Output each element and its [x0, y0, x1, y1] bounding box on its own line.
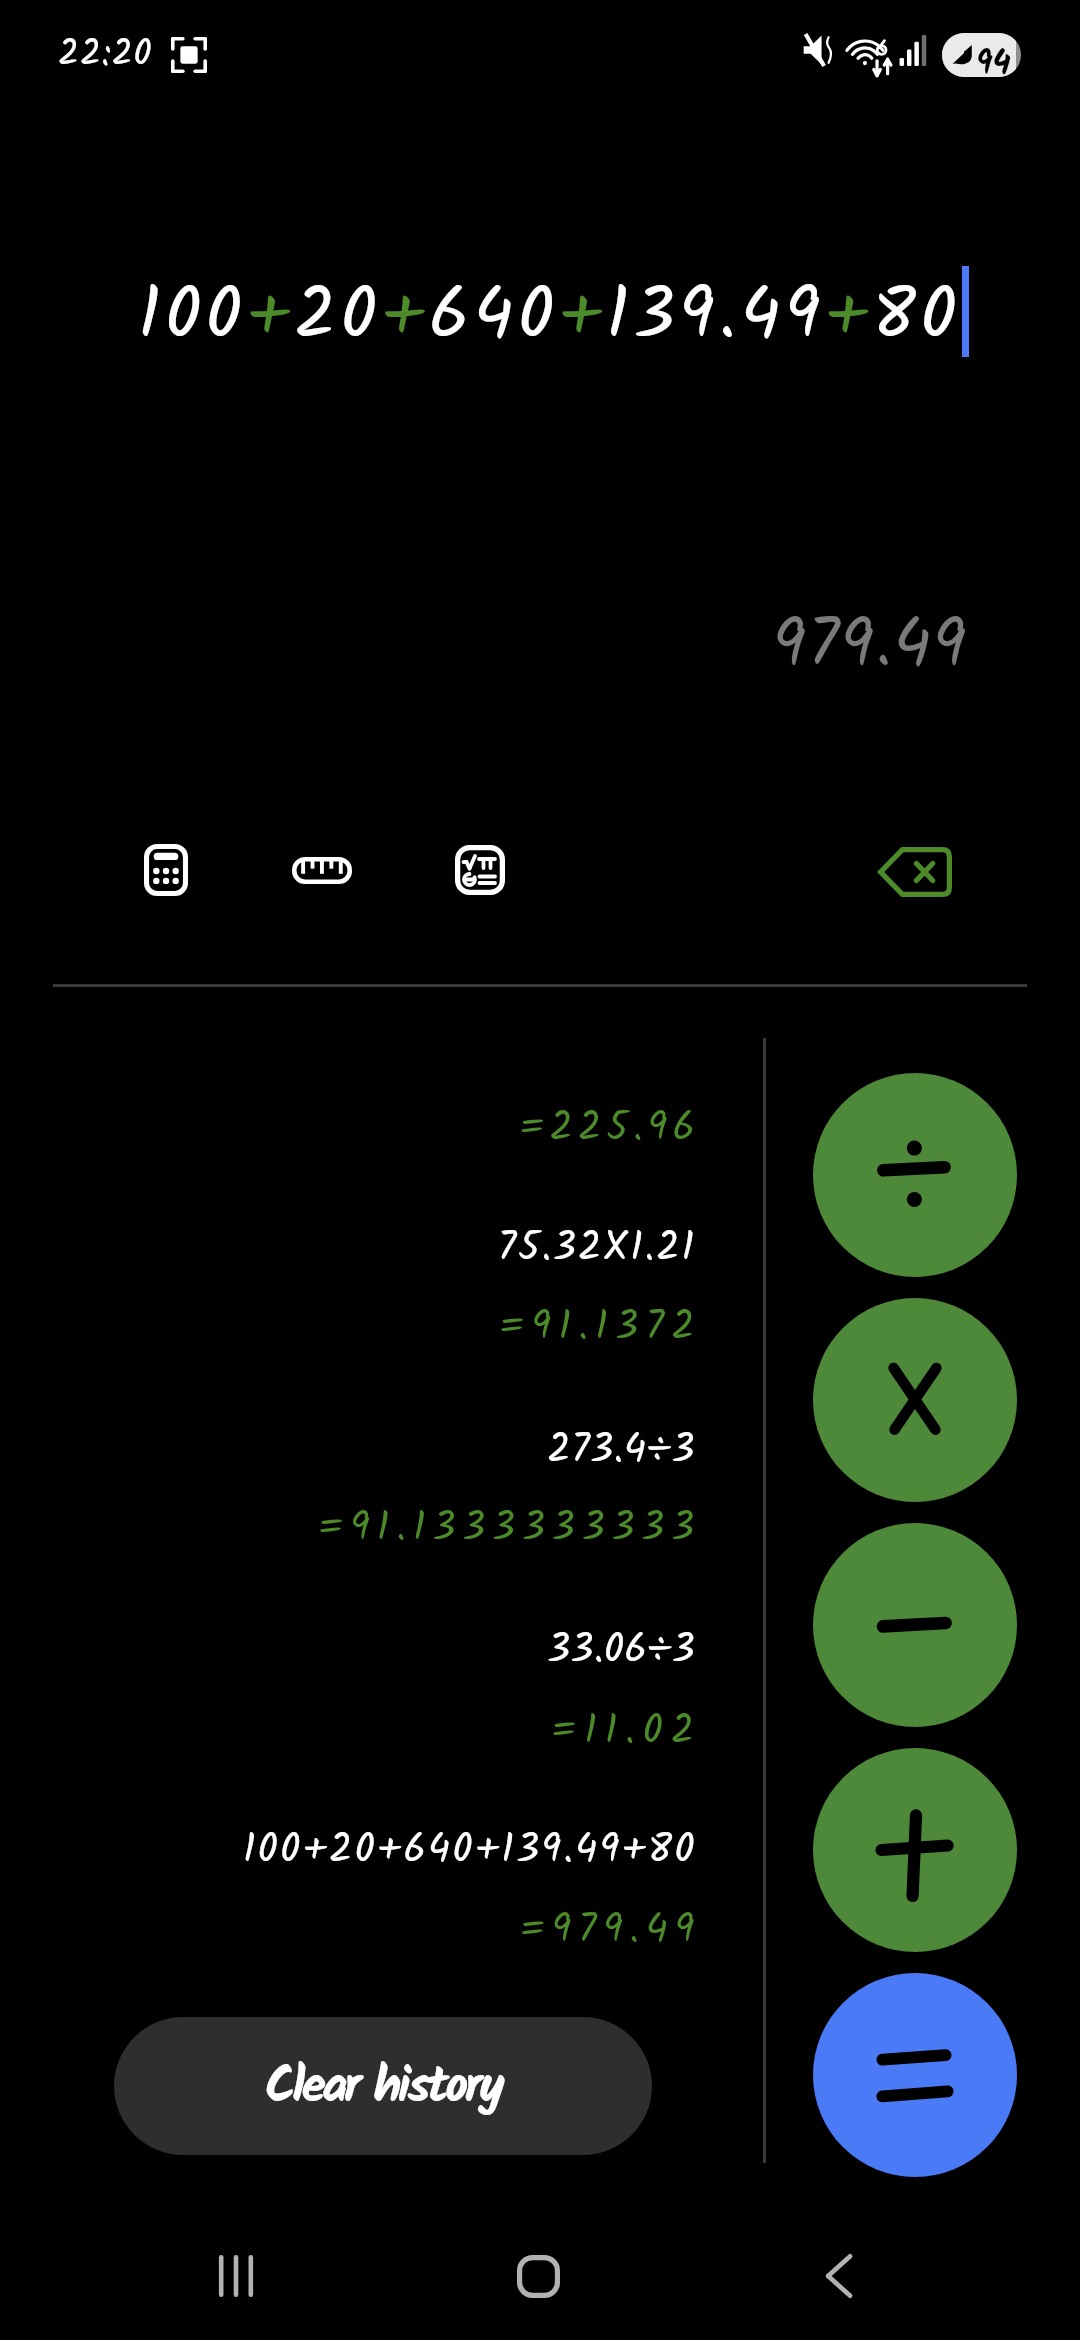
staticText: 22:20	[58, 27, 153, 84]
staticText: 75.32X1.21	[0, 1217, 696, 1281]
button[interactable]: Recents	[186, 2226, 286, 2326]
button[interactable]: Scientific	[430, 820, 530, 920]
staticText: 94	[976, 38, 1011, 77]
button[interactable]: Home	[488, 2226, 588, 2326]
button[interactable]: Clear history	[114, 2017, 652, 2155]
button[interactable]: Divide	[813, 1073, 1017, 1277]
staticText: =91.1333333333	[0, 1497, 701, 1561]
staticText: 33.06÷3	[0, 1619, 695, 1683]
staticText: 100+20+640+139.49+80	[138, 260, 962, 375]
staticText: =91.1372	[0, 1296, 702, 1360]
staticText: =979.49	[0, 1899, 701, 1963]
staticText: =11.02	[0, 1700, 702, 1764]
button[interactable]: Backspace	[865, 822, 965, 922]
button[interactable]: Multiply	[813, 1298, 1017, 1502]
button[interactable]: Calculator	[116, 820, 216, 920]
staticText: 100+20+640+139.49+80	[0, 1819, 697, 1883]
button[interactable]: Equals	[813, 1973, 1017, 2177]
button[interactable]: Minus	[813, 1523, 1017, 1727]
staticText: 273.4÷3	[0, 1419, 695, 1483]
button[interactable]: Plus	[813, 1748, 1017, 1952]
button[interactable]: Unit converter	[272, 820, 372, 920]
staticText: =225.96	[0, 1097, 700, 1161]
button[interactable]: Back	[790, 2226, 890, 2326]
staticText: 979.49	[0, 593, 968, 701]
staticText: Clear history	[265, 2049, 501, 2129]
